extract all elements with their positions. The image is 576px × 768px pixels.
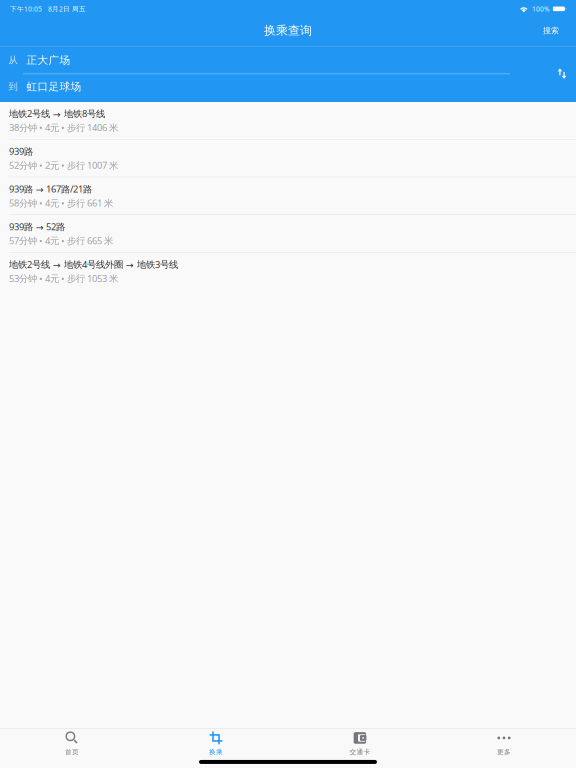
button[interactable]: 从 (0, 47, 576, 73)
button[interactable]: 搜索 (527, 20, 576, 46)
staticText: 换乘 (209, 748, 223, 756)
staticText: 更多 (497, 748, 511, 756)
button[interactable]: 到 (0, 74, 576, 99)
button[interactable]: 换乘 (144, 731, 288, 756)
button[interactable]: 地铁2号线 → 地铁4号线外圈 → 地铁3号线 (0, 253, 576, 290)
staticText: 到 (8, 81, 17, 92)
staticText: 交通卡 (349, 748, 370, 756)
button[interactable]: 939路 → 52路 (0, 215, 576, 252)
staticText: 正大广场 (26, 54, 70, 67)
staticText: 57分钟 • 4元 • 步行 665 米 (9, 234, 113, 247)
staticText: 58分钟 • 4元 • 步行 661 米 (9, 197, 113, 209)
staticText: 939路 → 167路/21路 (9, 183, 92, 195)
staticText: 地铁2号线 → 地铁8号线 (9, 107, 105, 120)
button[interactable]: 939路 (0, 140, 576, 177)
staticText: 53分钟 • 4元 • 步行 1053 米 (9, 272, 118, 284)
button[interactable]: 交通卡 (288, 731, 432, 756)
button[interactable]: 更多 (432, 731, 576, 756)
button[interactable]: 939路 → 167路/21路 (0, 177, 576, 214)
staticText: 虹口足球场 (26, 80, 81, 93)
staticText: 地铁2号线 → 地铁4号线外圈 → 地铁3号线 (9, 258, 178, 270)
staticText: 939路 (9, 145, 33, 157)
staticText: 换乘查询 (264, 23, 312, 38)
staticText: 939路 → 52路 (9, 220, 65, 233)
staticText: 首页 (65, 748, 79, 756)
staticText: 38分钟 • 4元 • 步行 1406 米 (9, 121, 118, 134)
staticText: 52分钟 • 2元 • 步行 1007 米 (9, 159, 118, 171)
button[interactable]: Swap origin and destination (548, 60, 576, 88)
staticText: 100% (532, 4, 550, 13)
staticText: 从 (8, 54, 17, 66)
button[interactable]: 地铁2号线 → 地铁8号线 (0, 102, 576, 139)
staticText: 下午10:05 8月2日 周五 (10, 4, 86, 13)
staticText: 搜索 (543, 26, 559, 35)
button[interactable]: 首页 (0, 731, 144, 756)
